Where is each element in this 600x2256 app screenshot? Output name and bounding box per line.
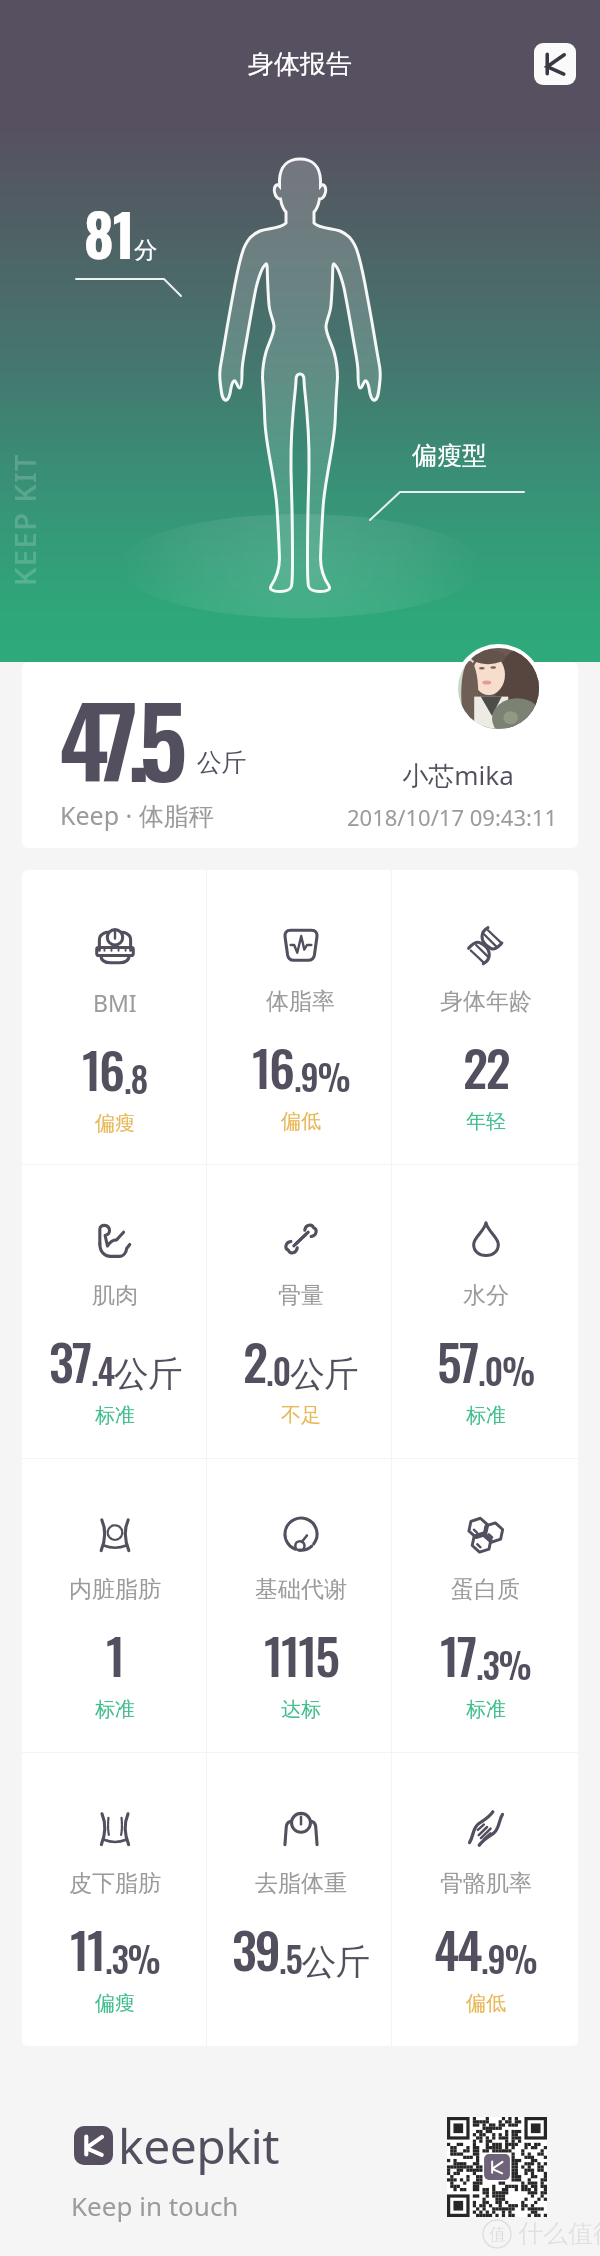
button[interactable]: 基础代谢 (208, 1458, 393, 1752)
staticText: 身体报告 (248, 48, 352, 81)
button[interactable]: 肌肉 (22, 1164, 208, 1458)
button[interactable]: 蛋白质 (393, 1458, 578, 1752)
button[interactable]: 骨量 (208, 1164, 393, 1458)
staticText: 标准 (466, 1403, 506, 1428)
button[interactable]: QR code (447, 2117, 547, 2217)
staticText: 2 (243, 1323, 266, 1397)
staticText: 11 (70, 1911, 105, 1985)
staticText: 去脂体重 (255, 1869, 347, 1898)
staticText: .0公斤 (266, 1344, 358, 1396)
staticText: 标准 (466, 1697, 506, 1722)
button[interactable]: 水分 (393, 1164, 578, 1458)
button[interactable]: 体脂率 (208, 870, 393, 1164)
button[interactable]: 骨骼肌率 (393, 1752, 578, 2046)
staticText: .3% (105, 1932, 160, 1984)
staticText: 标准 (95, 1403, 135, 1428)
staticText: 蛋白质 (451, 1575, 520, 1604)
staticText: 偏瘦 (95, 1111, 135, 1136)
staticText: 基础代谢 (255, 1575, 347, 1604)
staticText: 公斤 (197, 747, 246, 778)
staticText: .3% (476, 1638, 531, 1690)
button[interactable]: 身体年龄 (393, 870, 578, 1164)
staticText: .4公斤 (91, 1344, 182, 1396)
button[interactable]: 皮下脂肪 (22, 1752, 208, 2046)
staticText: 肌肉 (92, 1281, 138, 1310)
staticText: 年轻 (466, 1109, 506, 1134)
staticText: 16 (82, 1031, 124, 1105)
staticText: KEEP KIT (5, 453, 44, 586)
staticText: 水分 (463, 1281, 509, 1310)
staticText: 22 (463, 1029, 509, 1103)
staticText: 皮下脂肪 (69, 1869, 161, 1898)
staticText: 2018/10/17 09:43:11 (332, 802, 572, 832)
button[interactable]: User avatar (454, 644, 543, 733)
staticText: 39 (232, 1911, 279, 1985)
staticText: 47.5 (59, 666, 177, 810)
staticText: 分 (134, 236, 157, 265)
staticText: 偏低 (281, 1109, 321, 1134)
staticText: .9% (481, 1932, 537, 1984)
staticText: .9% (294, 1050, 350, 1102)
staticText: Keep · 体脂秤 (60, 798, 214, 832)
staticText: 偏低 (466, 1991, 506, 2016)
staticText: 不足 (281, 1403, 321, 1428)
button[interactable]: 内脏脂肪 (22, 1458, 208, 1752)
staticText: keepkit (118, 2113, 280, 2178)
staticText: 体脂率 (266, 987, 335, 1016)
staticText: 16 (252, 1029, 294, 1103)
staticText: 37 (49, 1323, 91, 1397)
staticText: .8 (124, 1052, 148, 1104)
staticText: 44 (434, 1911, 481, 1985)
button[interactable]: 47.5 (22, 662, 578, 848)
staticText: 骨量 (278, 1281, 324, 1310)
staticText: 小芯mika (358, 757, 558, 793)
button[interactable]: Keep logo (534, 43, 576, 85)
staticText: 1 (106, 1617, 124, 1691)
button[interactable]: 身体报告 (248, 48, 352, 81)
staticText: .0% (478, 1344, 534, 1396)
staticText: 身体年龄 (440, 987, 532, 1016)
staticText: .5公斤 (279, 1932, 370, 1984)
staticText: 标准 (95, 1697, 135, 1722)
staticText: Keep in touch (71, 2188, 239, 2223)
staticText: 什么值得买 (518, 2218, 600, 2249)
button[interactable]: BMI (22, 870, 208, 1164)
staticText: 57 (437, 1323, 478, 1397)
staticText: BMI (93, 987, 137, 1018)
staticText: 81 (84, 191, 134, 275)
button[interactable]: 去脂体重 (208, 1752, 393, 2046)
staticText: 17 (440, 1617, 476, 1691)
staticText: 1115 (264, 1617, 338, 1691)
staticText: 值 (489, 2224, 506, 2245)
staticText: 偏瘦型 (412, 440, 487, 471)
staticText: 内脏脂肪 (69, 1575, 161, 1604)
staticText: 达标 (281, 1697, 321, 1722)
staticText: 骨骼肌率 (440, 1869, 532, 1898)
staticText: 偏瘦 (95, 1991, 135, 2016)
button[interactable]: keepkit (74, 2113, 280, 2178)
